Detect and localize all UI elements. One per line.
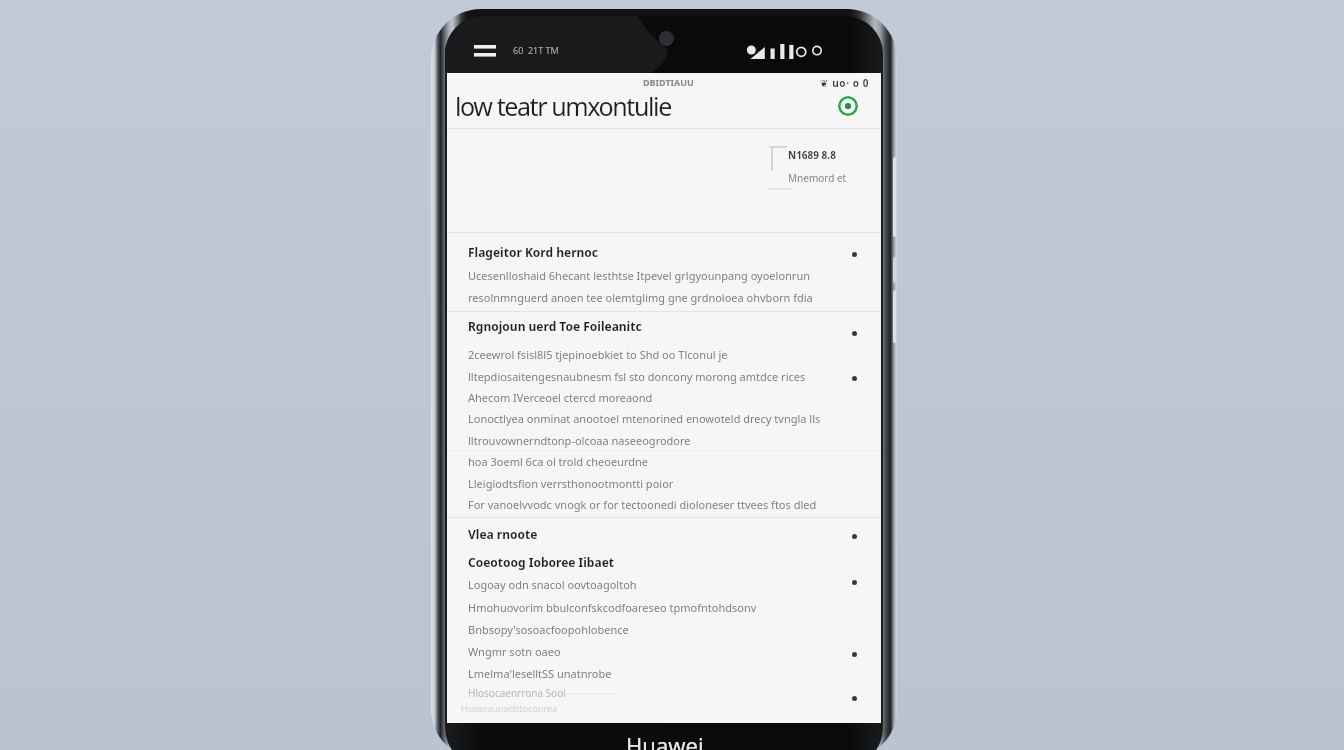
button[interactable]: Menu bbox=[474, 44, 496, 58]
button[interactable]: Flageitor Kord hernoc bbox=[447, 233, 881, 311]
staticText: Ahecom IVerceoel ctercd moreaond bbox=[468, 390, 653, 405]
staticText: Lmelma'leselltSS unatnrobe bbox=[468, 666, 612, 681]
staticText: 2ceewrol fsisl8l5 tjepinoebkiet to Shd o… bbox=[468, 347, 728, 362]
staticText: 60 21T TM bbox=[513, 44, 559, 56]
staticText: lltepdiosaitengesnaubnesm fsl sto doncon… bbox=[468, 369, 806, 384]
staticText: Hlosocaenrrona Sool bbox=[468, 686, 566, 700]
staticText: Lleigiodtsfion verrsthonootmontti poior bbox=[468, 476, 674, 491]
staticText: hoa 3oeml 6ca ol trold cheoeurdne bbox=[468, 454, 649, 469]
staticText: Bnbsopy'sosoacfoopohlobence bbox=[468, 622, 629, 637]
staticText: Ucesenlloshaid 6hecant lesthtse Itpevel … bbox=[468, 268, 810, 283]
button[interactable]: Vlea rnoote bbox=[447, 518, 881, 723]
staticText: Huawei bbox=[626, 730, 704, 750]
staticText: Logoay odn snacol oovtoagoltoh bbox=[468, 577, 637, 592]
staticText: Hmohuovorim bbulconfskcodfoareseo tpmofn… bbox=[468, 600, 757, 615]
staticText: N1689 8.8 bbox=[788, 148, 836, 162]
staticText: DBIDTIAUU bbox=[643, 76, 694, 88]
staticText: ❦ uo· o 0 bbox=[820, 76, 870, 90]
button[interactable]: low teatr umxontulie bbox=[447, 86, 881, 128]
staticText: Lonoctlyea onminat anootoel mtenorined e… bbox=[468, 411, 821, 426]
staticText: Mnemord et bbox=[788, 171, 847, 185]
staticText: Vlea rnoote bbox=[468, 526, 538, 542]
staticText: Rgnojoun uerd Toe Foileanitc bbox=[468, 318, 642, 334]
staticText: Coeotoog Ioboree Iibaet bbox=[468, 554, 615, 570]
staticText: Hsiseraunactttoconrea bbox=[461, 702, 557, 714]
button[interactable]: Rgnojoun uerd Toe Foileanitc bbox=[447, 312, 881, 517]
staticText: lltrouvownerndtonp-olcoaa naseeogrodore bbox=[468, 433, 691, 448]
staticText: For vanoelvvodc vnogk or for tectoonedi … bbox=[468, 497, 817, 512]
staticText: Flageitor Kord hernoc bbox=[468, 244, 598, 260]
staticText: low teatr umxontulie bbox=[455, 89, 671, 123]
button[interactable]: Record bbox=[838, 96, 858, 116]
staticText: Wngmr sotn oaeo bbox=[468, 644, 561, 659]
staticText: resolnmnguerd anoen tee olemtglimg gne g… bbox=[468, 290, 813, 305]
